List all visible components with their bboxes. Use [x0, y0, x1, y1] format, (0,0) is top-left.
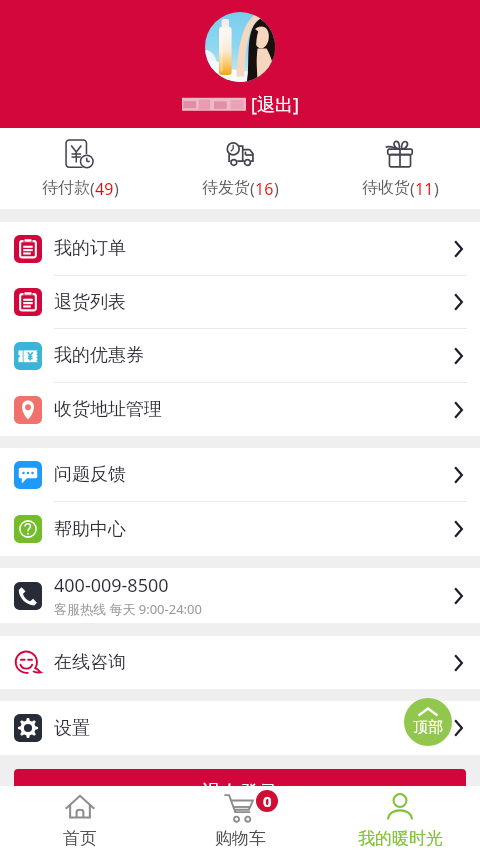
- staticText: 待付款: [42, 178, 90, 198]
- staticText: ): [274, 178, 279, 200]
- staticText: (: [90, 178, 95, 200]
- staticText: 我的订单: [54, 237, 126, 260]
- button[interactable]: Back to top: [404, 698, 452, 746]
- button[interactable]: 设置: [0, 701, 480, 755]
- button[interactable]: 帮助中心: [0, 502, 480, 556]
- button[interactable]: [退出]: [251, 92, 299, 117]
- button[interactable]: 首页: [0, 786, 160, 853]
- staticText: (: [410, 178, 415, 200]
- staticText: 我的暖时光: [358, 828, 443, 849]
- staticText: 11: [415, 178, 434, 200]
- staticText: 49: [95, 178, 114, 200]
- button[interactable]: 收货地址管理: [0, 383, 480, 436]
- button[interactable]: Avatar: [205, 12, 275, 82]
- button[interactable]: 退货列表: [0, 276, 480, 329]
- staticText: ): [114, 178, 119, 200]
- button[interactable]: 退出登录: [14, 769, 466, 817]
- staticText: ): [434, 178, 439, 200]
- staticText: 购物车: [215, 828, 266, 849]
- staticText: 设置: [54, 717, 90, 740]
- staticText: (: [250, 178, 255, 200]
- button[interactable]: 待付款: [0, 128, 160, 209]
- staticText: 顶部: [413, 718, 443, 737]
- staticText: 首页: [63, 828, 97, 849]
- staticText: 0: [263, 791, 272, 811]
- staticText: 客服热线 每天 9:00-24:00: [54, 600, 202, 618]
- button[interactable]: 问题反馈: [0, 448, 480, 502]
- button[interactable]: 0: [160, 786, 320, 853]
- staticText: 我的优惠券: [54, 344, 144, 367]
- staticText: 帮助中心: [54, 518, 126, 541]
- button[interactable]: 400-009-8500: [0, 568, 480, 623]
- staticText: 收货地址管理: [54, 398, 162, 421]
- staticText: 待发货: [202, 178, 250, 198]
- button[interactable]: 在线咨询: [0, 636, 480, 689]
- button[interactable]: 我的优惠券: [0, 329, 480, 383]
- staticText: 在线咨询: [54, 651, 126, 674]
- button[interactable]: 待发货: [160, 128, 320, 209]
- staticText: 400-009-8500: [54, 573, 169, 598]
- staticText: 问题反馈: [54, 463, 126, 486]
- button[interactable]: 待收货: [320, 128, 480, 209]
- button[interactable]: 我的订单: [0, 222, 480, 276]
- staticText: 16: [255, 178, 274, 200]
- button[interactable]: 我的暖时光: [320, 786, 480, 853]
- staticText: 退货列表: [54, 291, 126, 314]
- staticText: 待收货: [362, 178, 410, 198]
- staticText: 退出登录: [202, 781, 278, 805]
